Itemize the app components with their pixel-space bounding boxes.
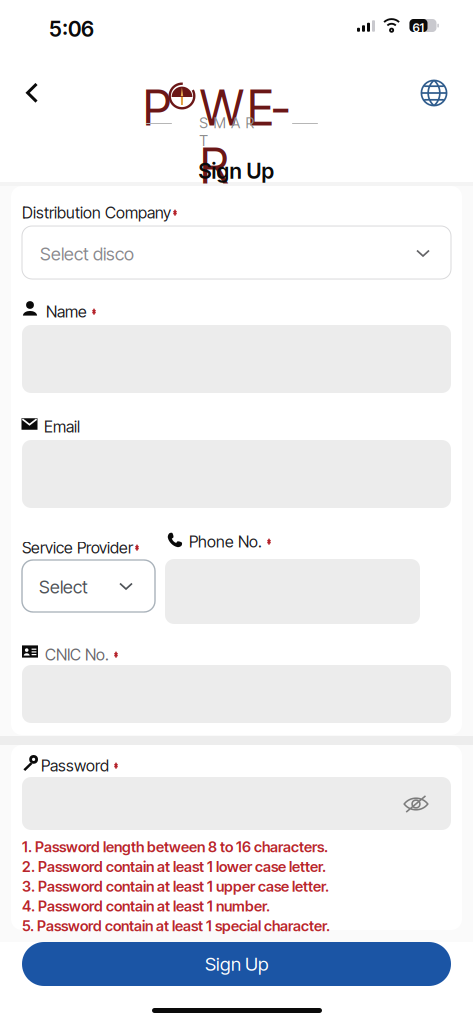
staticText: 1. Password length between 8 to 16 chara… — [22, 838, 328, 856]
staticText: Sign Up — [205, 953, 268, 975]
staticText: Password — [41, 756, 109, 775]
staticText: CNIC No. — [45, 645, 109, 664]
button[interactable]: Language — [412, 71, 456, 115]
button[interactable]: Sign Up — [22, 942, 451, 986]
staticText: Email — [44, 417, 80, 436]
staticText: Select — [39, 576, 88, 598]
staticText: S M A R T — [199, 114, 269, 132]
staticText: 2. Password contain at least 1 lower cas… — [22, 858, 326, 875]
staticText: Phone No. — [189, 532, 262, 551]
staticText: Service Provider — [22, 538, 133, 557]
staticText: 3. Password contain at least 1 upper cas… — [22, 877, 329, 895]
staticText: 4. Password contain at least 1 number. — [22, 897, 270, 915]
button[interactable]: Show password — [396, 784, 436, 824]
staticText: Select disco — [40, 243, 134, 265]
staticText: P — [143, 79, 171, 137]
staticText: Name — [46, 302, 87, 321]
button[interactable]: Back — [10, 71, 54, 115]
staticText: Sign Up — [198, 158, 274, 184]
staticText: Distribution Company — [22, 203, 171, 222]
staticText: 5:06 — [49, 16, 94, 42]
staticText: WER — [200, 79, 304, 137]
staticText: 5. Password contain at least 1 special c… — [22, 917, 330, 935]
staticText: 61 — [412, 20, 424, 35]
